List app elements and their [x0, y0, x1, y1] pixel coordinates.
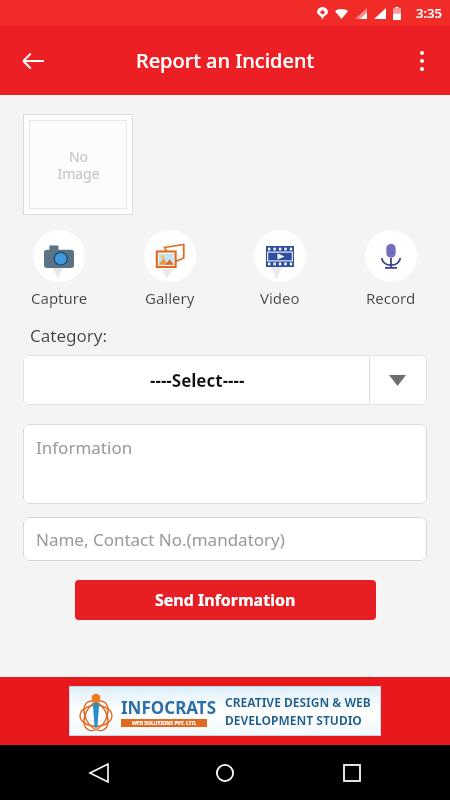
staticText: 3:35 [416, 4, 442, 22]
button[interactable]: Back [71, 745, 127, 800]
button[interactable]: Recent apps [324, 745, 380, 800]
staticText: Category: [30, 324, 107, 347]
button[interactable]: Home [197, 745, 253, 800]
staticText: Record [366, 288, 416, 308]
button[interactable]: Capture [14, 228, 104, 310]
button[interactable]: INFOCRATS [0, 677, 450, 745]
button[interactable]: No Image [23, 114, 133, 215]
staticText: Video [260, 288, 300, 308]
button[interactable]: Information [23, 424, 427, 504]
staticText: DEVELOPMENT STUDIO [225, 712, 362, 728]
staticText: No Image [57, 147, 100, 183]
staticText: INFOCRATS [121, 696, 217, 719]
button[interactable]: ----Select---- [23, 355, 427, 405]
staticText: Capture [31, 288, 88, 308]
staticText: Send Information [155, 589, 296, 611]
button[interactable]: Record [346, 228, 436, 310]
staticText: CREATIVE DESIGN & WEB [225, 694, 371, 710]
button[interactable]: Back [10, 38, 56, 84]
staticText: ----Select---- [150, 369, 245, 392]
button[interactable]: Video [235, 228, 325, 310]
staticText: Information [36, 436, 133, 459]
button[interactable]: Send Information [75, 580, 376, 620]
button[interactable]: Name, Contact No.(mandatory) [23, 517, 427, 561]
button[interactable]: Gallery [125, 228, 215, 310]
staticText: WEB SOLUTIONS PVT. LTD. [132, 720, 197, 727]
button[interactable]: More options [400, 39, 444, 83]
staticText: Report an Incident [136, 47, 315, 74]
staticText: Gallery [145, 288, 195, 308]
staticText: Name, Contact No.(mandatory) [36, 528, 285, 551]
